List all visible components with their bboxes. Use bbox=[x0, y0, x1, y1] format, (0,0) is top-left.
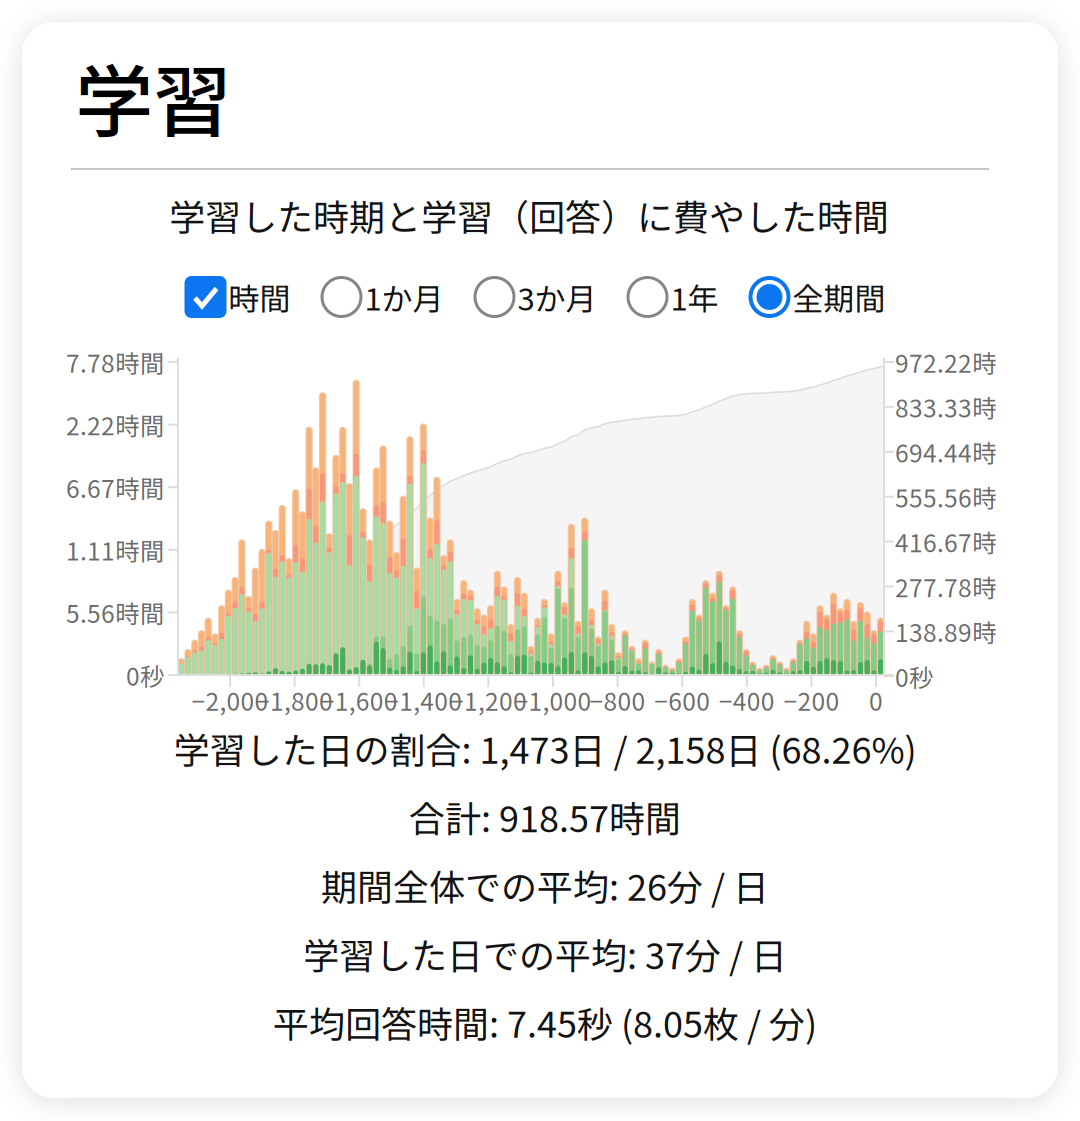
staticText: 0秒 bbox=[895, 659, 934, 694]
staticText: 学習した時期と学習（回答）に費やした時間 bbox=[169, 189, 889, 241]
staticText: 5.56時間 bbox=[66, 595, 165, 630]
staticText: −1,800 bbox=[256, 682, 333, 718]
staticText: −1,200 bbox=[450, 682, 527, 718]
staticText: 3か月 bbox=[517, 275, 596, 319]
button[interactable]: 全期間 bbox=[748, 275, 885, 319]
staticText: 277.78時 bbox=[895, 569, 997, 604]
staticText: −200 bbox=[783, 682, 839, 718]
staticText: 555.56時 bbox=[895, 479, 997, 514]
staticText: 138.89時 bbox=[895, 614, 997, 649]
staticText: 972.22時 bbox=[895, 344, 997, 380]
staticText: 1.11時間 bbox=[66, 532, 165, 568]
staticText: 学習 bbox=[75, 39, 231, 152]
staticText: −1,000 bbox=[514, 682, 591, 718]
staticText: 6.67時間 bbox=[66, 469, 165, 505]
staticText: −2,000 bbox=[191, 682, 268, 718]
staticText: 時間 bbox=[228, 275, 290, 319]
staticText: −800 bbox=[590, 682, 646, 718]
staticText: 833.33時 bbox=[895, 389, 997, 425]
staticText: −400 bbox=[719, 682, 775, 718]
staticText: −1,400 bbox=[385, 682, 462, 718]
staticText: 416.67時 bbox=[895, 524, 997, 559]
staticText: 1か月 bbox=[364, 275, 443, 319]
button[interactable]: 時間 bbox=[184, 275, 290, 319]
staticText: 1年 bbox=[670, 275, 718, 319]
staticText: 7.78時間 bbox=[66, 344, 165, 380]
staticText: 0秒 bbox=[126, 657, 165, 693]
staticText: 2.22時間 bbox=[66, 407, 165, 442]
button[interactable]: 3か月 bbox=[473, 275, 596, 319]
staticText: −1,600 bbox=[321, 682, 398, 718]
staticText: 694.44時 bbox=[895, 434, 997, 470]
staticText: 学習した日での平均: 37分 / 日 bbox=[303, 927, 787, 979]
staticText: 合計: 918.57時間 bbox=[409, 790, 681, 842]
staticText: 全期間 bbox=[792, 275, 885, 319]
staticText: −600 bbox=[654, 682, 710, 718]
staticText: 期間全体での平均: 26分 / 日 bbox=[321, 859, 769, 911]
staticText: 学習した日の割合: 1,473日 / 2,158日 (68.26%) bbox=[173, 722, 916, 774]
staticText: 平均回答時間: 7.45秒 (8.05枚 / 分) bbox=[273, 996, 817, 1048]
button[interactable]: 1年 bbox=[626, 275, 718, 319]
staticText: 0 bbox=[869, 682, 883, 718]
button[interactable]: 1か月 bbox=[320, 275, 443, 319]
